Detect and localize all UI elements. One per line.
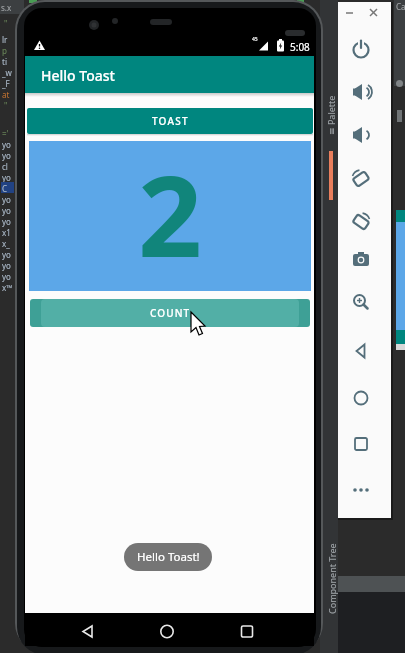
staticText: x_ <box>2 238 10 249</box>
staticText: Hello Toast <box>41 66 115 85</box>
staticText: yo <box>2 249 11 260</box>
staticText: yo <box>2 172 11 183</box>
staticText: yo <box>2 271 11 282</box>
staticText: _F <box>2 78 10 89</box>
staticText: cl <box>2 161 8 172</box>
staticText: _w <box>2 67 12 78</box>
staticText: yo <box>2 194 11 205</box>
staticText: COUNT <box>150 306 191 320</box>
staticText: Ca <box>396 1 405 12</box>
staticText: s.x <box>1 2 12 13</box>
staticText: =' <box>2 128 9 139</box>
staticText: yo <box>2 150 11 161</box>
staticText: yo <box>2 139 11 150</box>
staticText: Component Tree <box>326 543 338 614</box>
staticText: ≡ Palette <box>325 95 337 135</box>
button[interactable]: Hello Toast! <box>124 543 212 571</box>
staticText: ti <box>2 56 7 67</box>
staticText: " <box>4 100 8 111</box>
staticText: 45 <box>252 36 258 43</box>
staticText: p <box>2 45 7 56</box>
staticText: yo <box>2 216 11 227</box>
staticText: x™ <box>2 282 13 293</box>
staticText: yo <box>2 205 11 216</box>
staticText: at <box>2 89 10 100</box>
staticText: lr <box>2 34 8 45</box>
staticText: x1 <box>2 227 11 238</box>
staticText: yo <box>2 260 11 271</box>
button[interactable]: COUNT <box>30 299 310 327</box>
staticText: Hello Toast! <box>137 549 200 565</box>
staticText: " <box>4 18 8 29</box>
staticText: 5:08 <box>290 40 310 54</box>
staticText: C <box>2 183 8 194</box>
staticText: TOAST <box>152 114 189 128</box>
button[interactable]: TOAST <box>27 108 313 134</box>
staticText: 2 <box>138 137 203 287</box>
